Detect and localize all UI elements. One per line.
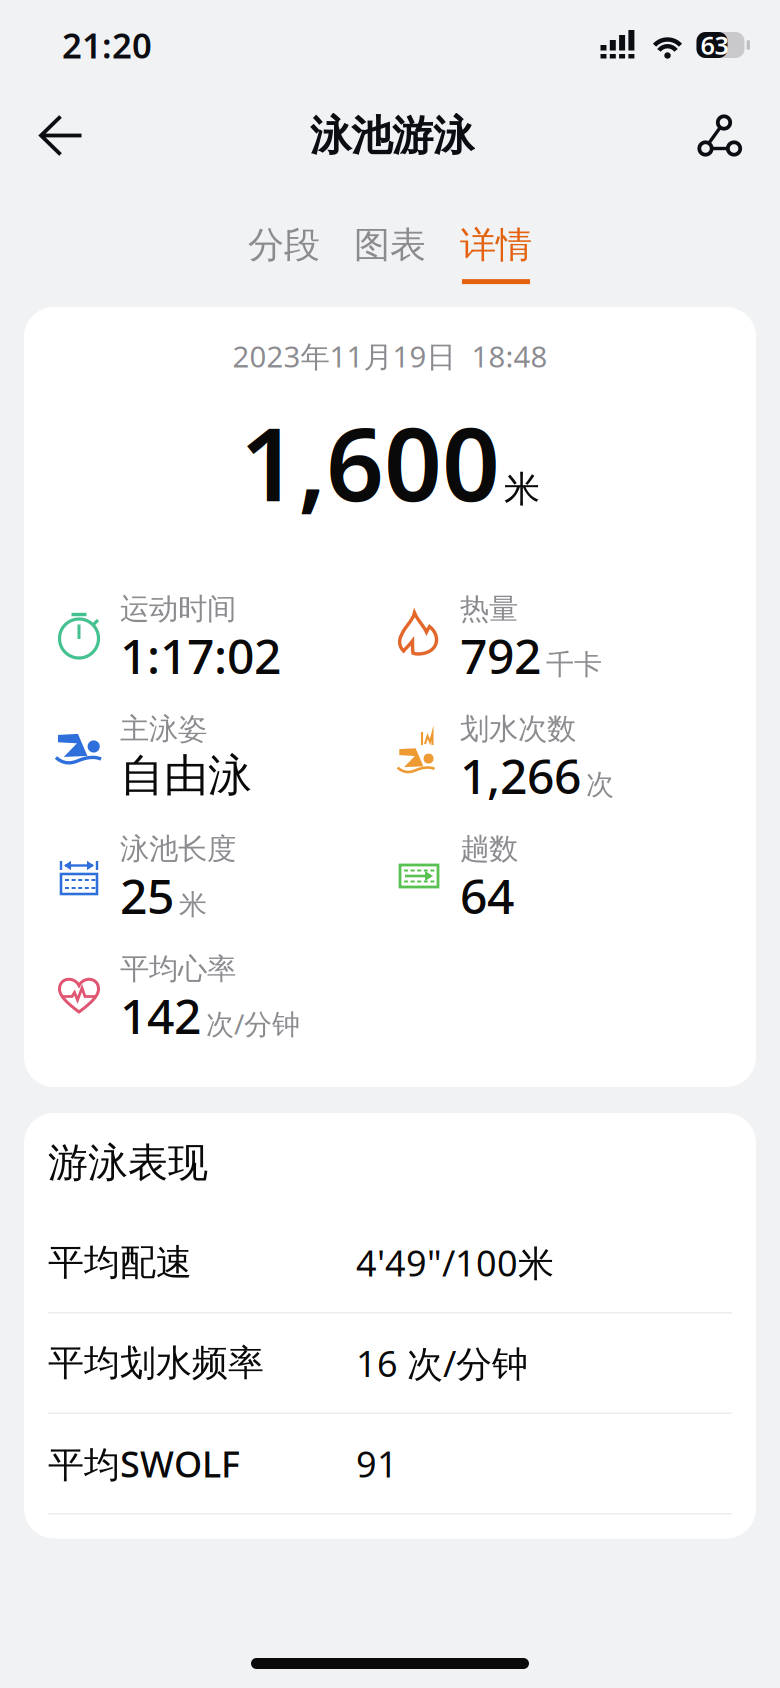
- staticText: 91: [356, 1440, 398, 1487]
- staticText: 主泳姿: [120, 711, 207, 747]
- staticText: 图表: [354, 223, 426, 267]
- staticText: 1,600: [240, 395, 500, 529]
- staticText: 泳池长度: [120, 831, 236, 867]
- staticText: 米: [179, 888, 207, 922]
- staticText: 趟数: [460, 831, 518, 867]
- staticText: 运动时间: [120, 591, 236, 627]
- staticText: 千卡: [546, 648, 602, 682]
- staticText: 次: [586, 768, 614, 802]
- button[interactable]: 图表: [337, 223, 443, 284]
- staticText: 63: [700, 28, 728, 62]
- staticText: 自由泳: [120, 748, 252, 802]
- button[interactable]: 分段: [231, 223, 337, 284]
- staticText: 16 次/分钟: [356, 1339, 528, 1387]
- staticText: 米: [504, 467, 540, 511]
- button[interactable]: 分享: [680, 92, 760, 180]
- staticText: 2023年11月19日 18:48: [232, 336, 547, 375]
- staticText: 64: [460, 864, 514, 927]
- staticText: 平均划水频率: [48, 1341, 264, 1385]
- staticText: 25: [120, 864, 174, 927]
- staticText: 792: [460, 624, 541, 687]
- button[interactable]: 返回: [18, 92, 104, 180]
- staticText: 游泳表现: [48, 1138, 208, 1187]
- staticText: 21:20: [62, 22, 152, 68]
- staticText: 热量: [460, 591, 518, 627]
- staticText: 划水次数: [460, 711, 576, 747]
- staticText: 1:17:02: [120, 624, 281, 687]
- staticText: 平均心率: [120, 951, 236, 987]
- staticText: 分段: [248, 223, 320, 267]
- staticText: 平均配速: [48, 1240, 192, 1285]
- staticText: 142: [120, 984, 201, 1047]
- staticText: 次/分钟: [206, 1005, 300, 1042]
- staticText: 平均SWOLF: [48, 1440, 240, 1487]
- staticText: 1,266: [460, 744, 581, 807]
- staticText: 详情: [460, 223, 532, 267]
- staticText: 4'49"/100米: [356, 1239, 554, 1286]
- staticText: 泳池游泳: [310, 111, 474, 161]
- button[interactable]: 详情: [443, 223, 549, 284]
